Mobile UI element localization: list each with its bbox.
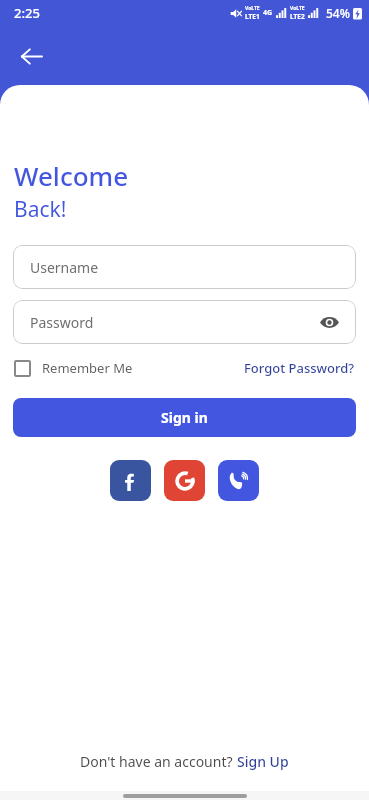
staticText: VoLTE xyxy=(245,5,260,12)
staticText: 4G xyxy=(263,8,273,18)
staticText: Don't have an account? xyxy=(80,752,237,771)
button[interactable]: Forgot Password? xyxy=(244,359,355,377)
staticText: 2:25 xyxy=(14,4,40,22)
button[interactable]: Sign in with Phone xyxy=(218,460,259,501)
button[interactable]: Sign Up xyxy=(237,752,289,771)
button[interactable]: Remember Me xyxy=(14,359,133,377)
staticText: LTE1 xyxy=(245,12,260,21)
button[interactable]: Show password xyxy=(316,309,342,335)
staticText: Username xyxy=(30,258,99,277)
staticText: LTE2 xyxy=(290,12,305,21)
button[interactable]: Sign in with Google xyxy=(164,460,205,501)
staticText: Sign Up xyxy=(237,752,289,771)
staticText: Forgot Password? xyxy=(244,359,355,377)
staticText: Sign in xyxy=(161,408,208,427)
button[interactable]: Password xyxy=(13,300,356,344)
button[interactable]: Back xyxy=(10,35,52,77)
staticText: Back! xyxy=(14,195,67,224)
button[interactable]: Sign in xyxy=(13,398,356,437)
staticText: Remember Me xyxy=(42,359,133,377)
staticText: Welcome xyxy=(14,158,129,193)
button[interactable]: Sign in with Facebook xyxy=(110,460,151,501)
staticText: 54% xyxy=(326,5,350,21)
staticText: Password xyxy=(30,313,94,332)
staticText: VoLTE xyxy=(290,5,305,12)
button[interactable]: Username xyxy=(13,245,356,289)
